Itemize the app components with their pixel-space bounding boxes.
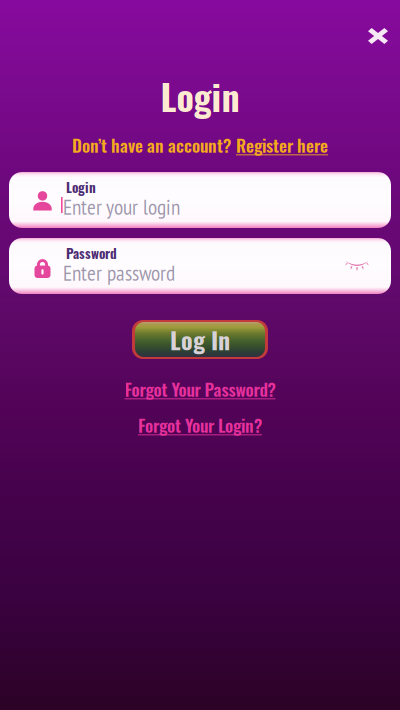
staticText: Log In [170, 322, 230, 357]
staticText: Forgot Your Login? [138, 412, 262, 438]
staticText: Login [66, 177, 96, 197]
staticText: Don’t have an account? [72, 132, 231, 158]
button[interactable]: Forgot Your Password? [0, 376, 400, 402]
button[interactable]: Login [9, 172, 391, 228]
button[interactable]: Close [356, 14, 400, 58]
staticText: Password [66, 243, 117, 263]
button[interactable]: Forgot Your Login? [0, 412, 400, 438]
staticText: Enter your login [63, 193, 180, 221]
button[interactable]: Password [9, 238, 391, 294]
button[interactable]: Register here [236, 132, 328, 158]
staticText: Login [160, 69, 239, 122]
staticText: Enter password [63, 259, 175, 287]
button[interactable]: Log In [132, 320, 268, 359]
staticText: Forgot Your Password? [124, 376, 275, 402]
staticText: Register here [236, 132, 328, 158]
